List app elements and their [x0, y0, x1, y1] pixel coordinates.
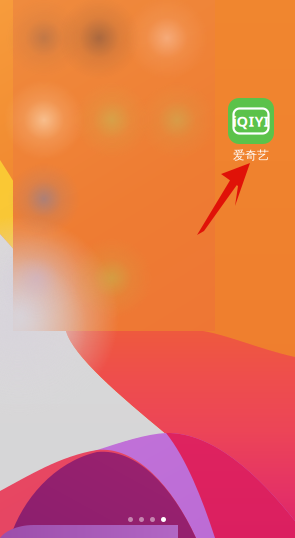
staticText: iQIYI — [232, 111, 269, 131]
staticText: 爱奇艺 — [233, 148, 269, 163]
button[interactable]: iQIYI — [220, 98, 282, 163]
